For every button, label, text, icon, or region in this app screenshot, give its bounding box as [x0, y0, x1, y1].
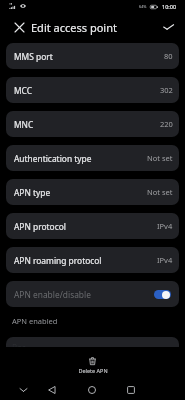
button[interactable]: Save	[158, 17, 178, 37]
staticText: IPv4	[157, 221, 173, 231]
button[interactable]: Recents	[124, 383, 138, 397]
staticText: Delete APN	[78, 367, 108, 374]
button[interactable]: MNC	[6, 111, 179, 137]
staticText: APN enabled	[12, 316, 58, 326]
button[interactable]: Close	[9, 17, 29, 37]
button[interactable]: APN enable/disable	[6, 281, 179, 307]
staticText: Authentication type	[14, 153, 92, 164]
button[interactable]: APN protocol	[6, 213, 179, 239]
staticText: Edit access point	[31, 20, 117, 35]
staticText: Not set	[147, 153, 173, 163]
button[interactable]: Home	[85, 383, 99, 397]
staticText: APN enable/disable	[14, 289, 91, 300]
staticText: MNC	[14, 119, 34, 130]
button[interactable]: Bea	[6, 337, 179, 347]
button[interactable]: APN type	[6, 179, 179, 205]
staticText: IPv4	[157, 255, 173, 265]
button[interactable]: APN roaming protocol	[6, 247, 179, 273]
staticText: APN protocol	[14, 221, 66, 232]
staticText: APN type	[14, 187, 51, 198]
staticText: MMS port	[14, 51, 53, 62]
staticText: 10:00	[162, 3, 177, 10]
button[interactable]: MMS port	[6, 43, 179, 69]
staticText: 80	[164, 51, 173, 61]
button[interactable]: Hide keyboard	[16, 383, 30, 397]
button[interactable]: Delete APN	[0, 353, 185, 378]
staticText: 64%	[139, 4, 147, 9]
staticText: MCC	[14, 85, 33, 96]
button[interactable]: Authentication type	[6, 145, 179, 171]
staticText: Not set	[147, 187, 173, 197]
button[interactable]: Back	[45, 383, 59, 397]
button[interactable]: MCC	[6, 77, 179, 103]
staticText: 220	[160, 119, 173, 129]
staticText: APN roaming protocol	[14, 255, 102, 266]
staticText: 302	[160, 85, 173, 95]
